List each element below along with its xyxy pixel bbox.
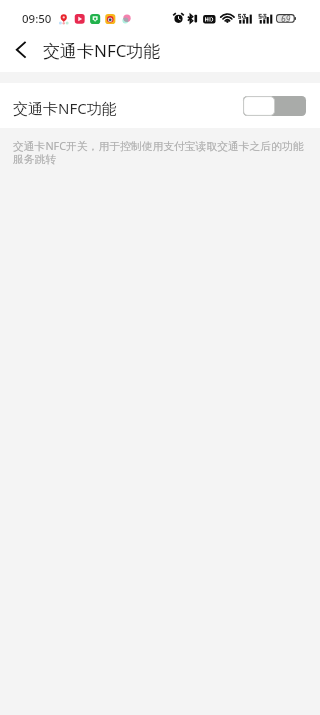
staticText: 交通卡NFC功能 bbox=[43, 39, 161, 62]
staticText: 交通卡NFC功能 bbox=[13, 98, 117, 118]
button[interactable]: 交通卡NFC功能 bbox=[0, 83, 320, 128]
staticText: 交通卡NFC开关，用于控制使用支付宝读取交通卡之后的功能服务跳转 bbox=[13, 138, 311, 167]
button[interactable]: 返回 bbox=[6, 34, 38, 64]
staticText: 09:50 bbox=[22, 11, 52, 27]
staticText: 69 bbox=[281, 13, 291, 25]
button[interactable]: 交通卡NFC功能开关 bbox=[243, 96, 306, 116]
